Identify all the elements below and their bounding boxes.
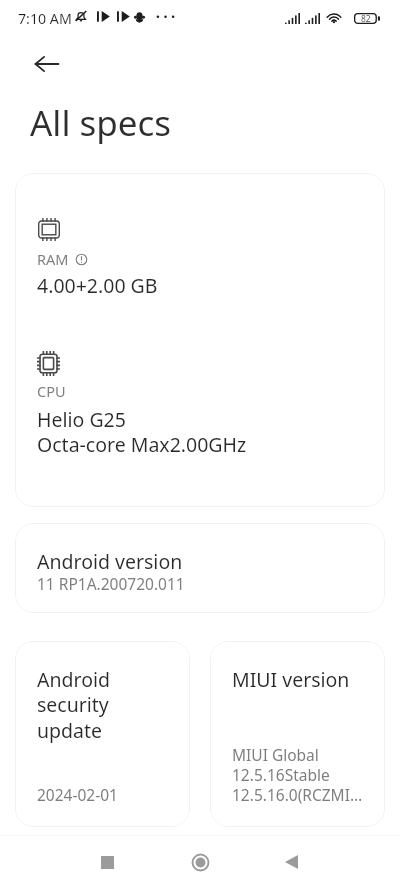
button[interactable]: Android version (15, 523, 385, 613)
staticText: RAM (37, 249, 69, 269)
staticText: Android security update (37, 666, 110, 744)
staticText: Helio G25 Octa-core Max2.00GHz (37, 406, 247, 457)
staticText: 4.00+2.00 GB (37, 272, 158, 299)
button[interactable]: Recent apps (83, 838, 131, 886)
staticText: 11 RP1A.200720.011 (37, 573, 185, 594)
staticText: MIUI Global 12.5.16Stable 12.5.16.0(RCZM… (232, 744, 363, 806)
staticText: MIUI version (232, 666, 350, 693)
staticText: Android version (37, 548, 183, 575)
staticText: CPU (37, 381, 66, 401)
staticText: 82 (361, 13, 371, 24)
button[interactable]: Back (267, 838, 315, 886)
button[interactable]: Home (176, 838, 224, 886)
button[interactable]: Back (25, 42, 69, 86)
button[interactable]: MIUI version (210, 641, 385, 827)
staticText: All specs (30, 99, 172, 147)
staticText: 7:10 AM (18, 9, 72, 28)
staticText: 2024-02-01 (37, 784, 118, 805)
button[interactable]: RAM (15, 173, 385, 507)
button[interactable]: Android security update (15, 641, 190, 827)
